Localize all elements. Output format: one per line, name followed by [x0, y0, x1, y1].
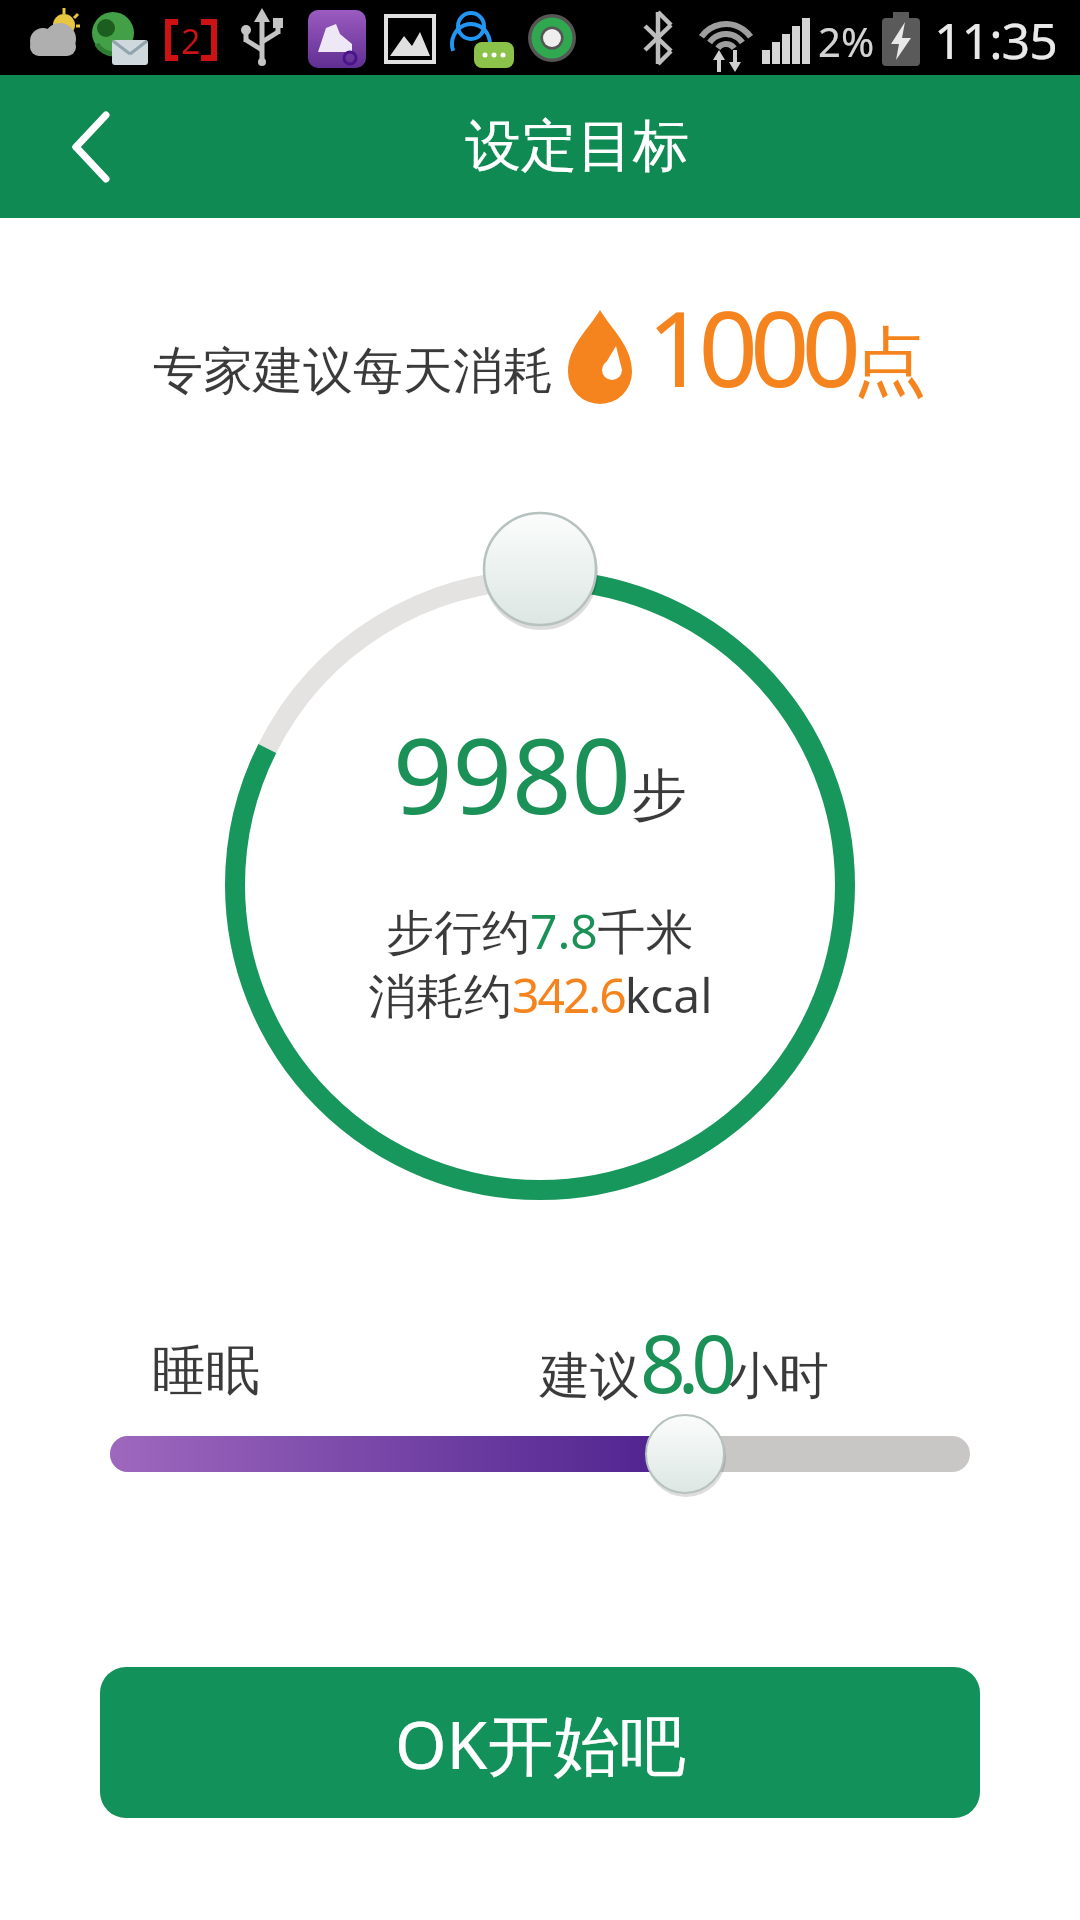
- button[interactable]: [0, 1390, 1080, 1520]
- staticText: 消耗约342.6kcal: [368, 962, 713, 1028]
- staticText: 设定目标: [465, 111, 689, 182]
- staticText: 1000点: [647, 276, 927, 418]
- staticText: 建议8.0小时: [540, 1307, 829, 1416]
- button[interactable]: OK开始吧: [100, 1667, 980, 1818]
- staticText: 9980步: [393, 703, 687, 845]
- staticText: 专家建议每天消耗: [153, 340, 553, 403]
- staticText: 睡眠: [152, 1337, 260, 1405]
- staticText: 2%: [818, 14, 875, 68]
- staticText: 2: [181, 18, 201, 64]
- button[interactable]: [26, 75, 156, 218]
- staticText: 11:35: [934, 6, 1057, 74]
- staticText: 步行约7.8千米: [386, 898, 694, 964]
- staticText: OK开始吧: [395, 1698, 686, 1788]
